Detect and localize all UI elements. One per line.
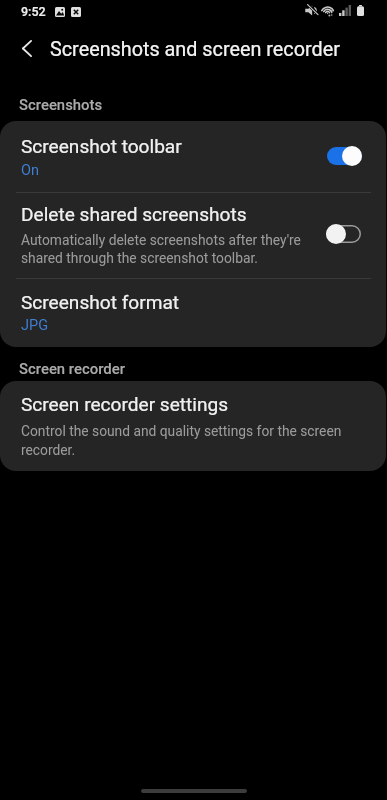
staticText: Control the sound and quality settings f… <box>21 423 342 459</box>
staticText: Screen recorder settings <box>21 393 229 415</box>
staticText: Screenshot toolbar <box>21 135 182 157</box>
staticText: On <box>21 162 39 179</box>
staticText: 9:52 <box>21 4 46 19</box>
button[interactable]: Turn on <box>326 224 361 244</box>
staticText: Screenshots <box>19 96 103 113</box>
button[interactable]: Navigate up <box>9 30 45 66</box>
staticText: Screenshots and screen recorder <box>50 38 340 61</box>
button[interactable]: Screenshot toolbar <box>0 121 386 192</box>
staticText: Automatically delete screenshots after t… <box>21 232 301 267</box>
staticText: JPG <box>21 317 49 334</box>
button[interactable]: Delete shared screenshots <box>0 192 386 278</box>
button[interactable]: Screenshot format <box>0 278 386 347</box>
staticText: Screen recorder <box>19 360 125 377</box>
button[interactable]: Turn off <box>327 146 362 166</box>
staticText: Screenshot format <box>21 291 180 313</box>
button[interactable]: Screen recorder settings <box>0 381 386 471</box>
staticText: Delete shared screenshots <box>21 203 247 225</box>
